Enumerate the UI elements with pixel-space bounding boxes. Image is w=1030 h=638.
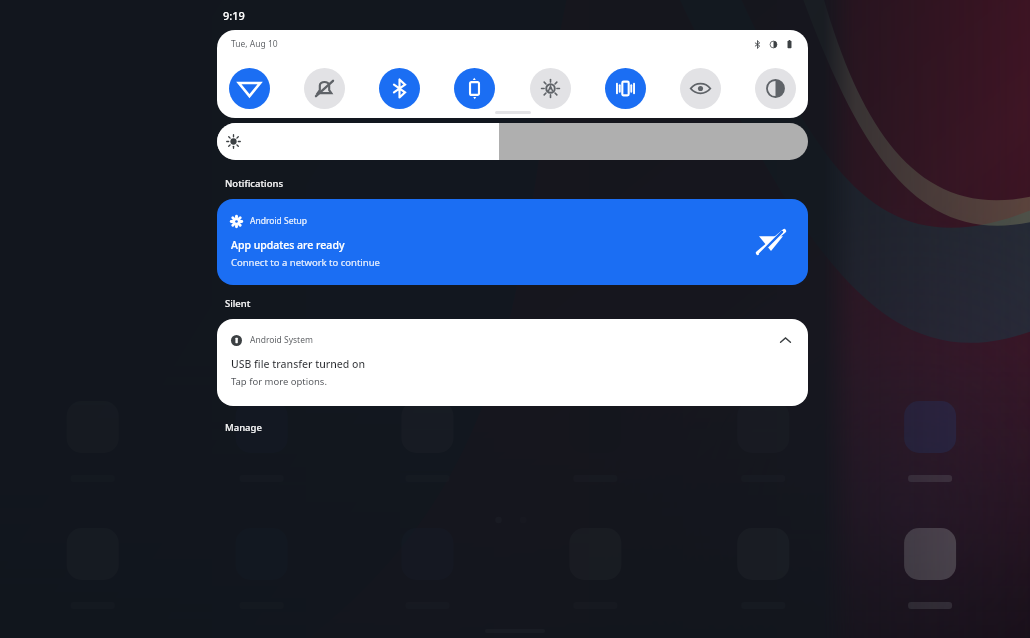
staticText: Android System <box>250 334 313 346</box>
button[interactable]: Bluetooth <box>379 68 420 109</box>
staticText: Connect to a network to continue <box>231 256 380 269</box>
staticText: USB file transfer turned on <box>231 357 366 371</box>
button[interactable]: Brightness <box>217 123 808 160</box>
staticText: Manage <box>225 421 262 434</box>
staticText: App updates are ready <box>231 238 345 252</box>
button[interactable]: Do not disturb <box>304 68 345 109</box>
button[interactable]: Collapse <box>772 327 798 353</box>
staticText: 9:19 <box>223 8 245 23</box>
button[interactable]: Auto-rotate <box>454 68 495 109</box>
button[interactable]: Night Light <box>680 68 721 109</box>
staticText: Tap for more options. <box>231 375 327 388</box>
button[interactable]: Wi-Fi <box>229 68 270 109</box>
button[interactable]: Android System <box>217 319 808 406</box>
button[interactable]: Android Setup <box>217 199 808 285</box>
button[interactable]: Dark theme <box>755 68 796 109</box>
button[interactable]: Manage <box>217 418 270 437</box>
staticText: Tue, Aug 10 <box>231 38 278 50</box>
staticText: Android Setup <box>250 215 308 227</box>
button[interactable]: Vibrate <box>605 68 646 109</box>
staticText: Silent <box>225 297 251 310</box>
button[interactable]: Auto-brightness <box>530 68 571 109</box>
staticText: Notifications <box>225 177 284 190</box>
